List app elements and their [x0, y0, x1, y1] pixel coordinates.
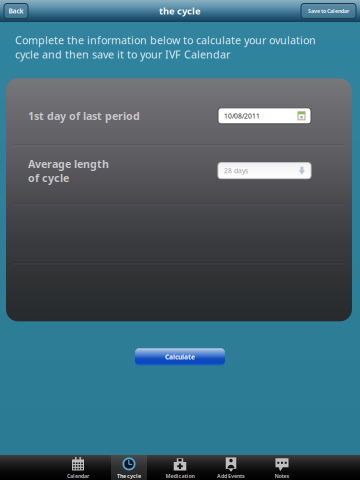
staticText: Medication — [165, 472, 194, 480]
button[interactable]: Notes — [256, 455, 307, 480]
staticText: The cycle — [117, 472, 141, 480]
staticText: Complete the information below to calcul… — [15, 33, 316, 61]
staticText: Average length — [28, 157, 109, 171]
staticText: Notes — [274, 472, 289, 480]
staticText: Calendar — [67, 472, 89, 480]
button[interactable]: Calculate — [135, 348, 225, 365]
staticText: 10/08/2011 — [224, 111, 260, 120]
button[interactable]: Add Events — [205, 455, 256, 480]
button[interactable]: Medication — [154, 455, 205, 480]
button[interactable]: 10/08/2011 — [218, 108, 311, 124]
button[interactable]: Back — [4, 3, 28, 18]
staticText: 28 days — [224, 166, 248, 175]
button[interactable]: Save to Calendar — [301, 3, 356, 18]
staticText: of cycle — [28, 171, 69, 185]
staticText: Back — [8, 7, 23, 15]
button[interactable]: Calendar — [52, 455, 103, 480]
staticText: 1st day of last period — [28, 109, 140, 123]
staticText: Save to Calendar — [308, 7, 349, 15]
staticText: the cycle — [159, 5, 201, 17]
button[interactable]: 28 days — [218, 163, 311, 179]
button[interactable]: The cycle — [103, 455, 154, 480]
staticText: Add Events — [217, 472, 245, 480]
staticText: Calculate — [165, 352, 195, 361]
